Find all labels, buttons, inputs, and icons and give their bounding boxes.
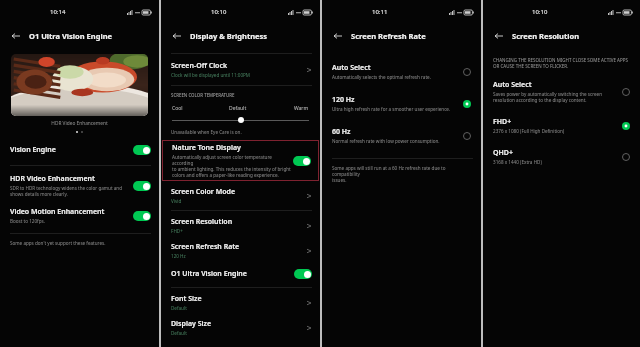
staticText: SCREEN COLOR TEMPERATURE (171, 92, 235, 98)
staticText: Ultra high refresh rate for a smoother u… (332, 106, 451, 112)
staticText: FHD+ (171, 228, 183, 234)
staticText: Default (229, 105, 247, 112)
button[interactable]: Screen-Off Clock (161, 58, 320, 81)
button[interactable]: Back (491, 28, 507, 44)
staticText: Auto Select (332, 63, 371, 73)
button[interactable]: Screen Color Mode (161, 184, 320, 207)
button[interactable]: Toggle (294, 269, 312, 279)
button[interactable]: Video Motion Enhancement (0, 204, 159, 227)
button[interactable]: Toggle (133, 145, 151, 155)
staticText: 2376 x 1080 (Full High Definition) (493, 128, 565, 134)
staticText: Vivid (171, 198, 182, 204)
staticText: HDR Video Enhancement (0, 120, 159, 127)
button[interactable]: Font Size (161, 291, 320, 314)
button[interactable]: Select option (620, 86, 632, 98)
button[interactable]: Select option (461, 98, 473, 110)
staticText: 120 Hz (171, 253, 186, 259)
staticText: O1 Ultra Vision Engine (29, 31, 113, 41)
button[interactable]: Display Size (161, 316, 320, 339)
button[interactable]: Select option (461, 130, 473, 142)
button[interactable]: 120 Hz (322, 92, 481, 115)
staticText: Screen Resolution (512, 31, 580, 41)
button[interactable]: Select option (461, 66, 473, 78)
button[interactable]: FHD+ (483, 114, 640, 137)
staticText: Automatically adjust screen color temper… (172, 154, 293, 178)
staticText: O1 Ultra Vision Engine (171, 269, 247, 279)
button[interactable]: Toggle (133, 181, 151, 191)
staticText: 120 Hz (332, 95, 355, 105)
button[interactable]: Select option (620, 120, 632, 132)
staticText: Automatically selects the optimal refres… (332, 74, 431, 80)
staticText: CHANGING THE RESOLUTION MIGHT CLOSE SOME… (493, 57, 628, 69)
staticText: Display Size (171, 319, 211, 329)
staticText: QHD+ (493, 148, 513, 158)
staticText: Screen-Off Clock (171, 61, 228, 71)
staticText: Screen Refresh Rate (171, 242, 240, 252)
staticText: 3168 x 1440 (Extra HD) (493, 159, 542, 165)
button[interactable]: HDR Video Enhancement (0, 171, 159, 200)
staticText: Video Motion Enhancement (10, 207, 105, 217)
button[interactable]: Back (8, 28, 24, 44)
staticText: Unavailable when Eye Care is on. (171, 129, 242, 135)
staticText: Some apps will still run at a 60 Hz refr… (332, 165, 473, 183)
staticText: Boost to 120fps. (10, 218, 45, 224)
staticText: FHD+ (493, 117, 512, 127)
staticText: 10:11 (372, 8, 388, 16)
staticText: Auto Select (493, 80, 532, 90)
staticText: Default (171, 330, 187, 336)
staticText: Nature Tone Display (172, 143, 241, 153)
staticText: Saves power by automatically switching t… (493, 91, 603, 103)
staticText: Warm (294, 105, 309, 112)
staticText: 60 Hz (332, 127, 351, 137)
staticText: 10:10 (532, 8, 548, 16)
button[interactable]: Vision Engine (0, 140, 159, 160)
button[interactable]: Back (169, 28, 185, 44)
button[interactable]: Screen Refresh Rate (161, 239, 320, 262)
staticText: Display & Brightness (190, 31, 268, 41)
staticText: 10:10 (211, 8, 227, 16)
staticText: HDR Video Enhancement (10, 174, 95, 184)
staticText: Font Size (171, 294, 202, 304)
staticText: Vision Engine (10, 145, 56, 155)
staticText: Screen Resolution (171, 217, 233, 227)
staticText: SDR to HDR technology widens the color g… (10, 185, 123, 197)
button[interactable]: Auto Select (483, 77, 640, 106)
staticText: Clock will be displayed until 11:00PM (171, 72, 251, 78)
staticText: Normal refresh rate with low power consu… (332, 138, 440, 144)
button[interactable]: Screen Resolution (161, 214, 320, 237)
staticText: Screen Color Mode (171, 187, 235, 197)
staticText: Some apps don't yet support these featur… (10, 240, 106, 246)
button[interactable]: O1 Ultra Vision Engine (161, 264, 320, 284)
button[interactable]: Back (330, 28, 346, 44)
button[interactable]: Toggle (133, 211, 151, 221)
button[interactable]: Toggle (293, 156, 311, 166)
button[interactable]: Nature Tone Display (162, 140, 319, 181)
button[interactable]: 60 Hz (322, 124, 481, 147)
button[interactable]: Select option (620, 151, 632, 163)
button[interactable]: QHD+ (483, 145, 640, 168)
staticText: Cool (172, 105, 183, 112)
button[interactable]: Auto Select (322, 60, 481, 83)
button[interactable]: Color temperature slider (172, 115, 309, 125)
staticText: Screen Refresh Rate (351, 31, 426, 41)
staticText: 10:14 (50, 8, 66, 16)
staticText: Default (171, 305, 187, 311)
